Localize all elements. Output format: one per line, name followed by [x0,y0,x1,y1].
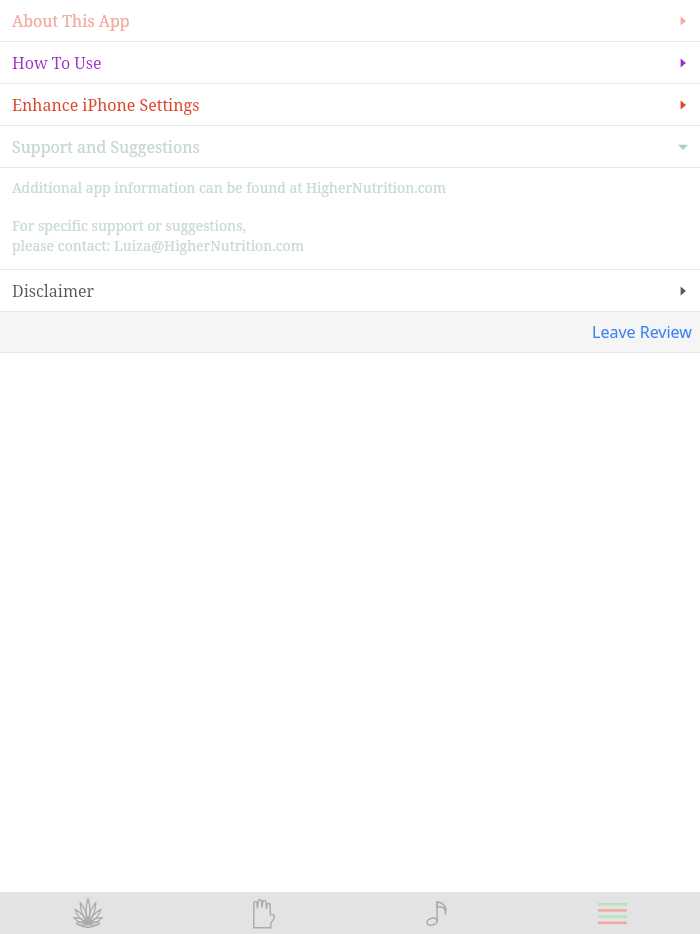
staticText: Enhance iPhone Settings [12,94,200,116]
button[interactable]: How To Use [0,42,700,83]
staticText: About This App [12,10,130,32]
staticText: Support and Suggestions [12,136,200,158]
button[interactable]: Disclaimer [0,270,700,311]
button[interactable]: Sounds [350,892,525,934]
staticText: For specific support or suggestions, ple… [12,216,304,255]
staticText: How To Use [12,52,102,74]
button[interactable]: About This App [0,0,700,41]
staticText: Additional app information can be found … [12,178,446,197]
button[interactable]: Menu [525,892,700,934]
staticText: Disclaimer [12,280,95,302]
button[interactable]: Gestures [175,892,350,934]
button[interactable]: Meditate [0,892,175,934]
button[interactable]: Enhance iPhone Settings [0,84,700,125]
button[interactable]: Support and Suggestions [0,126,700,167]
button[interactable]: Leave Review [0,312,700,352]
staticText: Leave Review [592,321,692,343]
